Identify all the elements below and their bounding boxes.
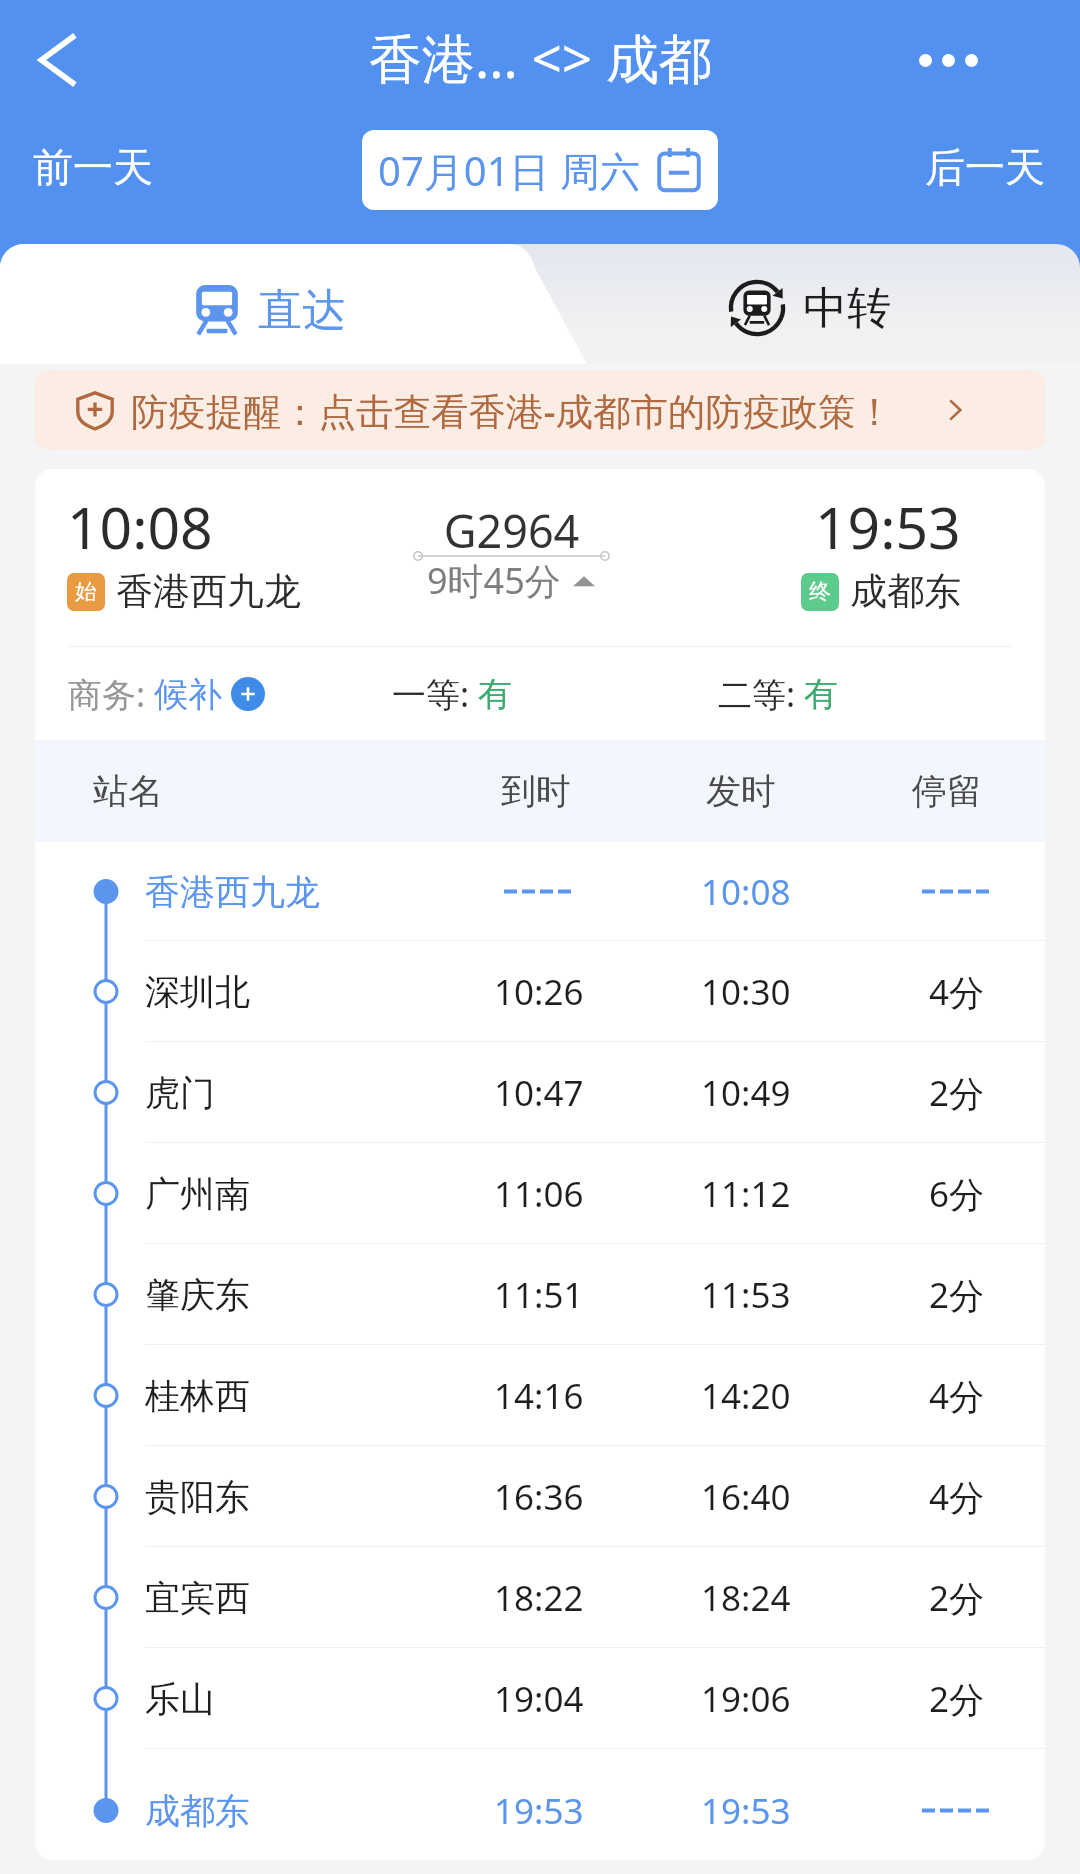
staticText: 二等: [718,671,804,717]
staticText: 防疫提醒：点击查看香港-成都市的防疫政策！ [131,385,894,436]
staticText: 11:12 [701,1170,791,1218]
staticText: 14:20 [701,1372,791,1420]
button[interactable]: 贵阳东 [35,1446,1045,1547]
staticText: 候补 [154,673,222,716]
staticText: 始 [75,578,97,606]
staticText: 10:30 [701,968,791,1016]
staticText: G2964 [413,500,610,561]
staticText: 到时 [501,769,571,813]
staticText: 2分 [929,1069,985,1117]
staticText: 桂林西 [145,1374,250,1418]
staticText: 广州南 [145,1172,250,1216]
staticText: 11:53 [701,1271,791,1319]
staticText: 9时45分 [427,556,561,605]
staticText: 10:08 [67,488,213,566]
button[interactable]: 防疫提醒：点击查看香港-成都市的防疫政策！ [75,370,970,450]
staticText: 11:06 [494,1170,584,1218]
staticText: 肇庆东 [145,1273,250,1317]
staticText: 2分 [929,1675,985,1723]
staticText: 香港... <> 成都 [369,21,712,93]
staticText: 10:49 [701,1069,791,1117]
staticText: 19:04 [494,1675,584,1723]
staticText: 站名 [93,769,163,813]
staticText: 成都东 [850,568,961,615]
staticText: 停留 [912,769,982,813]
button[interactable]: 肇庆东 [35,1244,1045,1345]
staticText: 宜宾西 [145,1576,250,1620]
staticText: 商务: [68,671,154,717]
staticText: 16:40 [701,1473,791,1521]
staticText: 前一天 [33,142,153,192]
staticText: 直达 [258,283,346,338]
button[interactable]: 直达 [191,252,401,368]
staticText: 4分 [929,968,985,1016]
staticText: 18:22 [494,1574,584,1622]
staticText: 贵阳东 [145,1475,250,1519]
button[interactable]: 商务: [68,671,265,717]
button[interactable]: 广州南 [35,1143,1045,1244]
button[interactable]: 后一天 [915,127,1045,207]
staticText: 4分 [929,1372,985,1420]
staticText: 香港西九龙 [116,568,301,615]
staticText: 16:36 [494,1473,584,1521]
staticText: 2分 [929,1574,985,1622]
button[interactable]: 成都东 [35,1749,1045,1860]
staticText: 乐山 [145,1677,215,1721]
staticText: 11:51 [494,1271,584,1319]
other: Add to waitlist [231,677,265,711]
staticText: 19:06 [701,1675,791,1723]
button[interactable]: 07月01日 周六 [362,130,718,210]
staticText: 10:08 [701,868,791,916]
staticText: 19:53 [494,1787,584,1835]
button[interactable]: More options [910,22,986,98]
button[interactable]: Back [27,30,87,90]
staticText: 10:26 [494,968,584,1016]
staticText: 中转 [803,281,891,336]
staticText: 2分 [929,1271,985,1319]
button[interactable]: 深圳北 [35,941,1045,1042]
staticText: 4分 [929,1473,985,1521]
staticText: 19:53 [701,1787,791,1835]
staticText: 香港西九龙 [145,870,320,914]
button[interactable]: 乐山 [35,1648,1045,1749]
staticText: 深圳北 [145,970,250,1014]
staticText: 6分 [929,1170,985,1218]
staticText: 07月01日 周六 [378,143,640,198]
button[interactable]: 中转 [728,250,948,366]
staticText: 发时 [706,769,776,813]
staticText: 有 [804,673,838,716]
staticText: 14:16 [494,1372,584,1420]
staticText: 10:47 [494,1069,584,1117]
staticText: 有 [478,673,512,716]
button[interactable]: 宜宾西 [35,1547,1045,1648]
staticText: 成都东 [145,1789,250,1833]
staticText: 后一天 [925,142,1045,192]
staticText: 18:24 [701,1574,791,1622]
staticText: 终 [809,578,831,606]
button[interactable]: 虎门 [35,1042,1045,1143]
button[interactable]: 前一天 [33,127,163,207]
staticText: 一等: [392,671,478,717]
button[interactable]: 香港西九龙 [35,842,1045,941]
staticText: 虎门 [145,1071,215,1115]
staticText: 19:53 [815,488,961,566]
button[interactable]: 桂林西 [35,1345,1045,1446]
